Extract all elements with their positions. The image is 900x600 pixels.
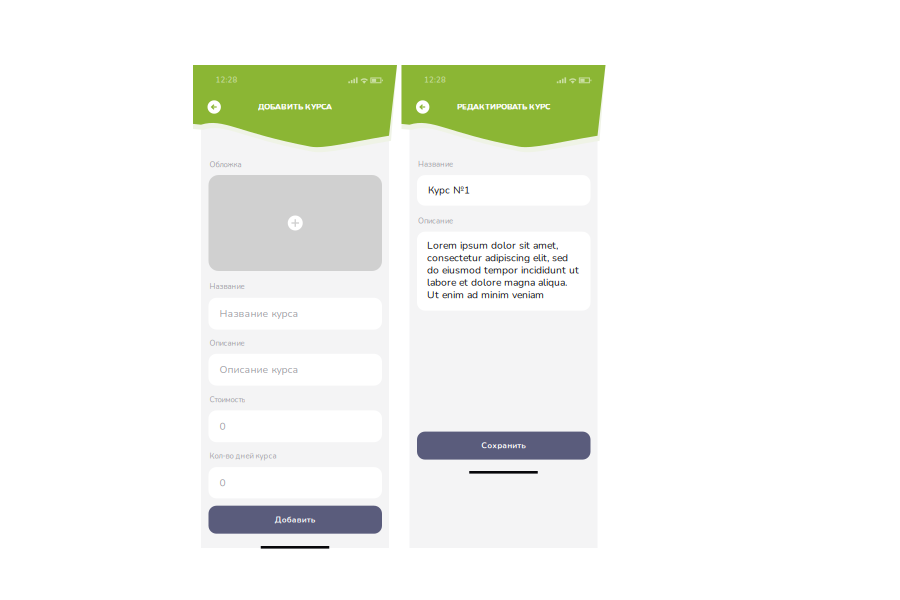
staticText: Сохранить [481,440,526,451]
staticText: 0 [219,419,225,433]
staticText: Добавить [275,514,316,525]
staticText: ДОБАВИТЬ КУРСА [258,102,332,112]
staticText: 12:28 [215,74,237,85]
button[interactable]: Добавить [208,506,382,534]
button[interactable]: Back [416,100,429,114]
staticText: Стоимость [209,394,245,405]
staticText: Название курса [219,307,298,321]
staticText: consectetur adipiscing elit, sed [427,252,568,264]
staticText: Курс №1 [428,184,470,197]
button[interactable]: Название курса [208,298,382,330]
button[interactable]: Add cover image [208,175,382,271]
button[interactable]: Описание курса [208,354,382,386]
button[interactable]: Back [207,100,221,114]
staticText: Обложка [209,159,241,170]
staticText: РЕДАКТИРОВАТЬ КУРС [457,102,550,112]
button[interactable]: Lorem ipsum dolor sit amet, [417,232,590,311]
staticText: Lorem ipsum dolor sit amet, [427,239,558,252]
staticText: Описание [209,338,244,348]
staticText: Название [418,159,453,169]
staticText: Название [209,281,244,292]
staticText: Ut enim ad minim veniam [427,289,544,301]
staticText: do eiusmod tempor incididunt ut [427,264,579,276]
staticText: 0 [219,476,225,490]
button[interactable]: Сохранить [417,432,590,460]
button[interactable]: 0 [208,467,382,498]
button[interactable]: 0 [208,410,382,442]
staticText: 12:28 [424,74,446,85]
button[interactable]: Курс №1 [417,175,590,206]
staticText: Кол-во дней курса [209,451,276,461]
staticText: labore et dolore magna aliqua. [427,276,567,289]
staticText: Описание [418,216,453,226]
staticText: Описание курса [219,363,298,377]
